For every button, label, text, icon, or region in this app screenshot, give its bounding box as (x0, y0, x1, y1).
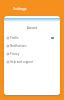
staticText: Help and support (10, 60, 54, 64)
staticText: Account (4, 26, 60, 30)
button[interactable]: Privacy (4, 50, 60, 58)
staticText: Settings (13, 6, 27, 11)
button[interactable]: Help and support (4, 58, 60, 66)
staticText: Profile (10, 36, 51, 40)
button[interactable]: Settings (0, 0, 64, 16)
other: Toggle (51, 37, 54, 39)
button[interactable]: Profile (4, 34, 60, 42)
button[interactable]: Notifications (4, 42, 60, 50)
staticText: Notifications (10, 44, 54, 48)
staticText: Privacy (10, 52, 54, 56)
